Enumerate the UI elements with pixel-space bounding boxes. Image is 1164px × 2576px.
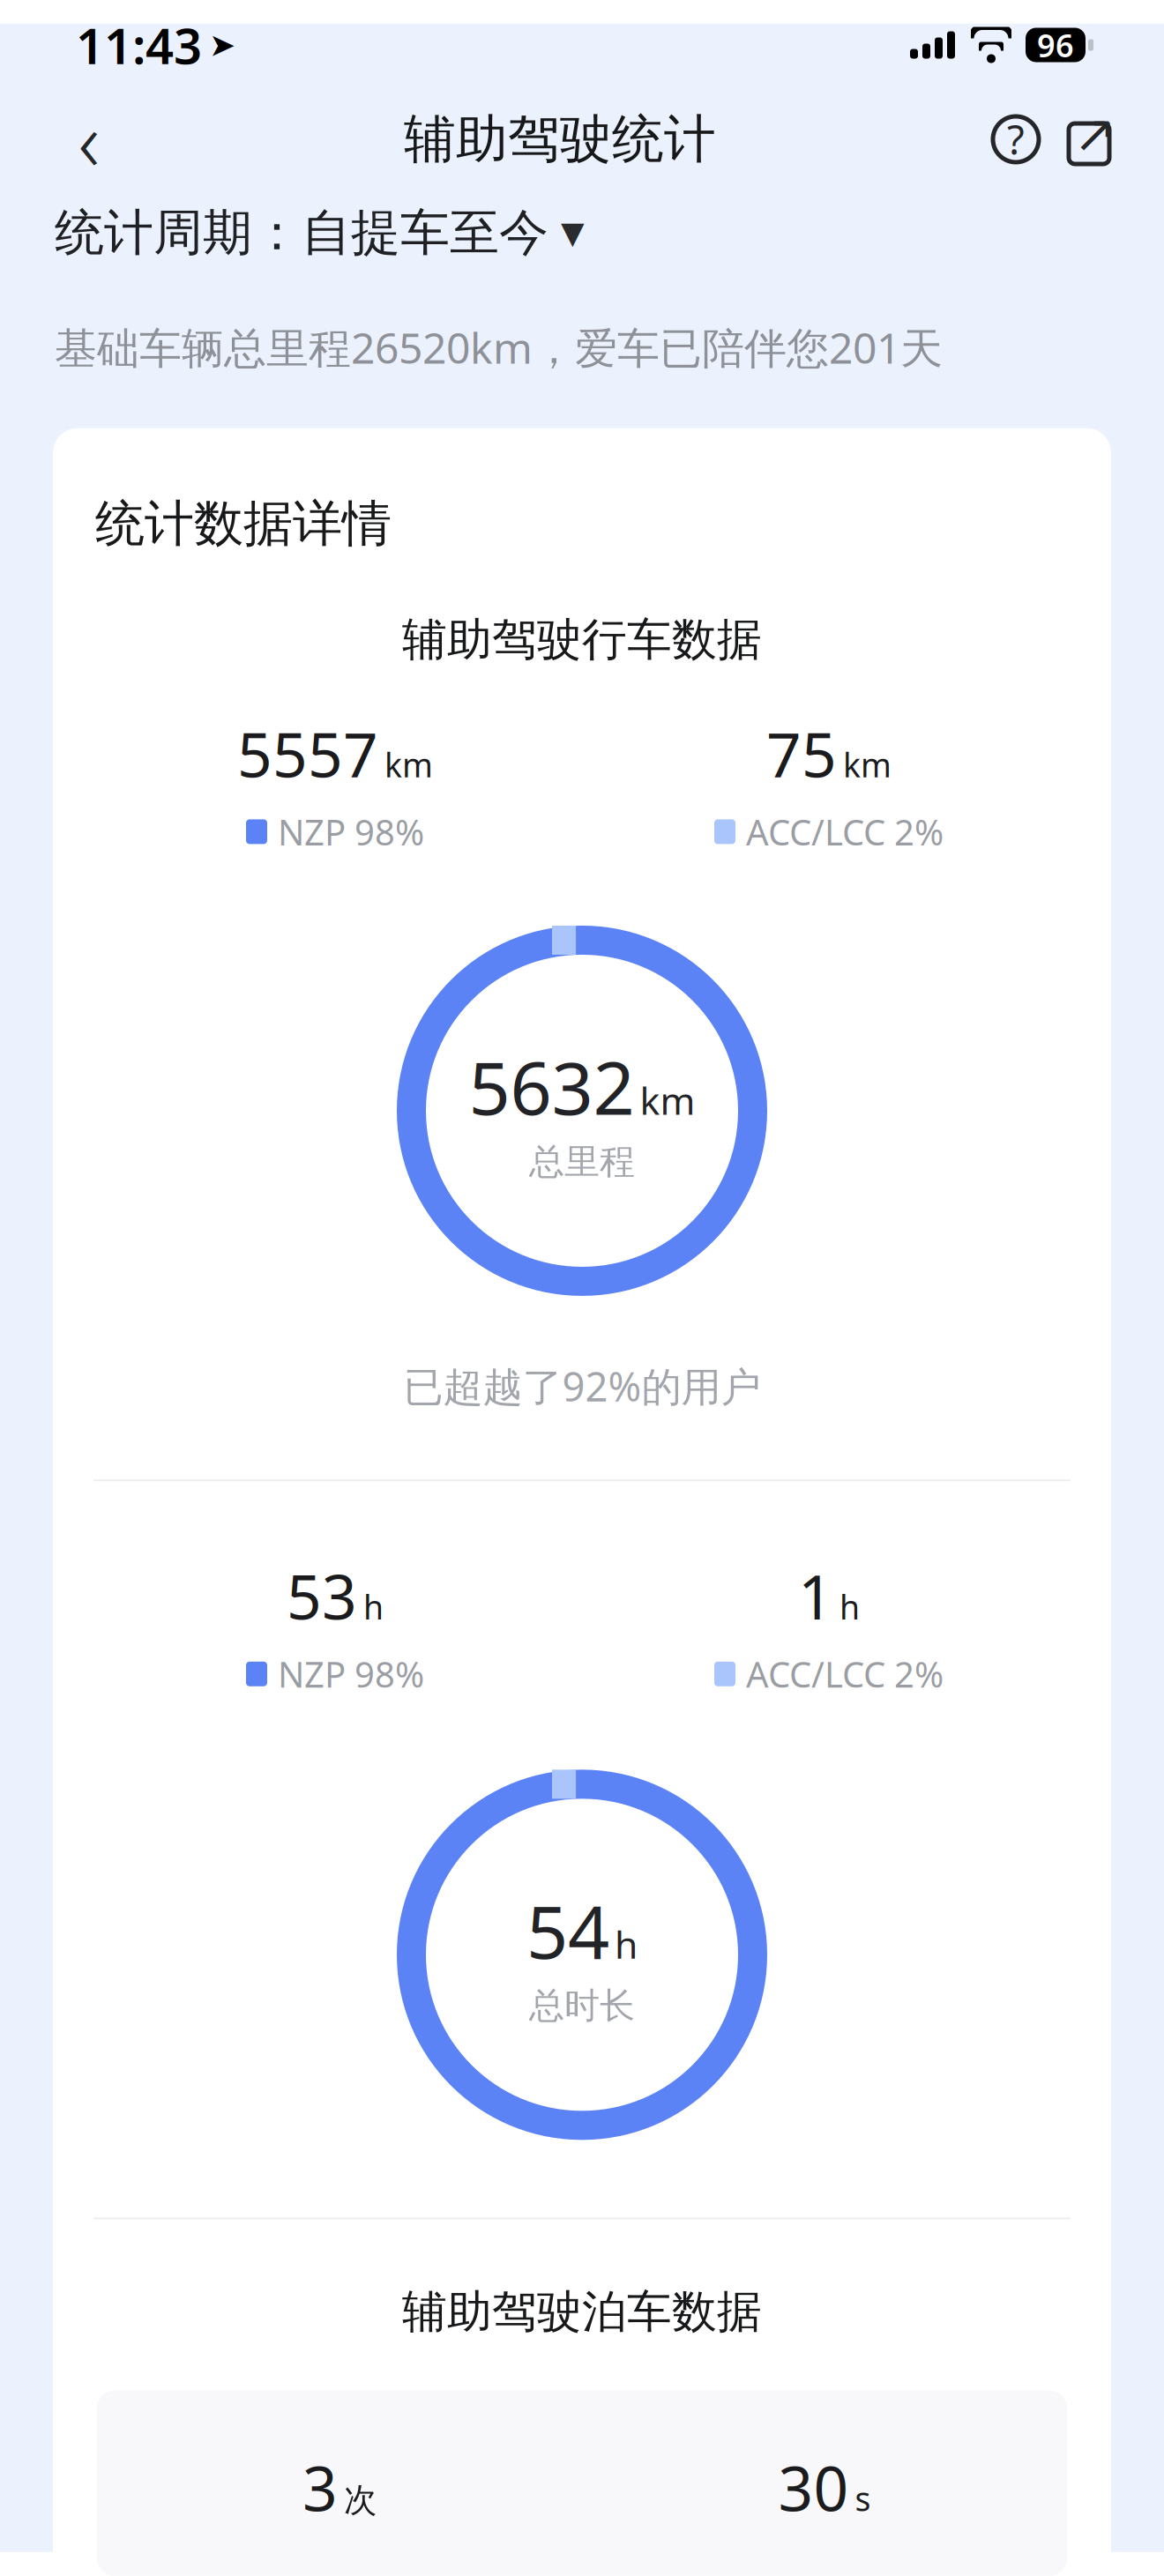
staticText: 辅助驾驶泊车数据 xyxy=(402,2284,762,2339)
staticText: ‹ xyxy=(78,85,100,194)
staticText: 基础车辆总里程26520km，爱车已陪伴您201天 xyxy=(55,319,943,375)
staticText: h xyxy=(363,1585,384,1629)
staticText: 统计周期： xyxy=(55,202,302,263)
staticText: 次 xyxy=(344,2480,377,2520)
staticText: ACC/LCC 2% xyxy=(746,1651,944,1697)
staticText: ? xyxy=(1007,113,1025,166)
staticText: 96 xyxy=(1037,24,1074,66)
staticText: h xyxy=(839,1585,860,1629)
staticText: 总时长 xyxy=(529,1984,635,2027)
button[interactable]: 统计周期： xyxy=(0,189,1164,277)
staticText: ➤ xyxy=(209,27,235,63)
staticText: 自提车至今 xyxy=(302,202,548,263)
staticText: 辅助驾驶行车数据 xyxy=(402,612,762,667)
staticText: ↗ xyxy=(1074,105,1117,163)
staticText: km xyxy=(384,743,433,786)
staticText: ACC/LCC 2% xyxy=(746,808,944,855)
staticText: ▼ xyxy=(561,215,585,250)
staticText: 1 xyxy=(798,1555,833,1636)
button[interactable]: 帮助 xyxy=(984,108,1048,171)
staticText: h xyxy=(615,1919,638,1969)
staticText: 5632 xyxy=(469,1038,634,1135)
button[interactable]: 分享 xyxy=(1048,114,1120,165)
staticText: 统计数据详情 xyxy=(95,493,392,554)
staticText: NZP 98% xyxy=(278,1651,424,1697)
staticText: 53 xyxy=(287,1555,357,1636)
staticText: km xyxy=(640,1075,695,1125)
staticText: 75 xyxy=(766,713,837,794)
staticText: 总里程 xyxy=(529,1140,635,1183)
staticText: 11:43 xyxy=(76,12,202,78)
staticText: 辅助驾驶统计 xyxy=(404,108,716,171)
staticText: 5557 xyxy=(237,713,378,794)
staticText: 54 xyxy=(526,1882,609,1979)
staticText: 已超越了92%的用户 xyxy=(403,1359,761,1412)
staticText: km xyxy=(843,743,892,786)
button[interactable]: 返回 xyxy=(42,108,136,170)
staticText: s xyxy=(855,2477,871,2520)
staticText: 3 xyxy=(302,2447,338,2528)
staticText: NZP 98% xyxy=(278,808,424,855)
staticText: 30 xyxy=(778,2447,849,2528)
